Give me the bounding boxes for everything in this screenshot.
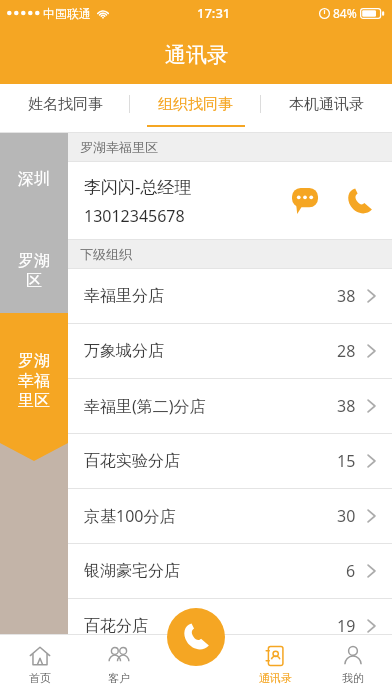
staticText: 13012345678 [84,205,185,227]
staticText: 京基100分店 [84,505,337,527]
button[interactable]: 组织层级面包屑 [0,133,68,696]
button[interactable]: 发送消息 [284,180,326,222]
staticText: 罗湖幸福里区 [80,139,158,155]
staticText: 6 [346,560,356,582]
button[interactable]: 银湖豪宅分店 [68,544,392,598]
staticText: 组织找同事 [158,95,233,114]
staticText: 下级组织 [80,246,132,262]
staticText: 首页 [29,671,51,685]
staticText: 28 [337,340,356,362]
button[interactable]: 拨打电话 [338,180,380,222]
staticText: 84% [333,5,357,21]
staticText: 罗湖 幸福 里区 [18,351,50,411]
button[interactable]: 百花分店 [68,599,392,653]
staticText: 客户 [108,671,130,685]
button[interactable]: 姓名找同事 [0,84,130,133]
staticText: 李闪闪-总经理 [84,175,192,198]
staticText: 通讯录 [165,42,228,68]
staticText: 幸福里分店 [84,286,337,306]
button[interactable]: 组织找同事 [130,84,261,133]
staticText: 万象城分店 [84,341,337,361]
button[interactable]: 通讯录 [236,634,314,696]
button[interactable]: 幸福里分店 [68,269,392,323]
button[interactable]: 万象城分店 [68,324,392,378]
staticText: 30 [337,505,356,527]
button[interactable]: 我的 [314,634,392,696]
button[interactable]: 李闪闪-总经理 [68,162,392,239]
staticText: 罗湖 区 [18,251,50,291]
staticText: 深圳 [18,169,50,189]
staticText: 通讯录 [259,671,292,685]
staticText: 幸福里(第二)分店 [84,395,337,417]
button[interactable]: 首页 [0,634,79,696]
button[interactable]: 本机通讯录 [261,84,392,133]
button[interactable]: 拨号 [167,608,225,666]
staticText: 我的 [342,671,364,685]
staticText: 17:31 [197,4,231,22]
staticText: 百花实验分店 [84,451,337,471]
button[interactable]: 京基100分店 [68,489,392,543]
staticText: 本机通讯录 [289,95,364,114]
button[interactable]: 客户 [79,634,158,696]
staticText: 姓名找同事 [28,95,103,114]
staticText: 百花分店 [84,616,337,636]
staticText: 38 [337,395,356,417]
staticText: 38 [337,285,356,307]
staticText: 15 [337,450,356,472]
button[interactable]: 幸福里(第二)分店 [68,379,392,433]
staticText: 银湖豪宅分店 [84,561,346,581]
staticText: 19 [337,615,356,637]
button[interactable]: 百花实验分店 [68,434,392,488]
staticText: 中国联通 [43,6,91,21]
